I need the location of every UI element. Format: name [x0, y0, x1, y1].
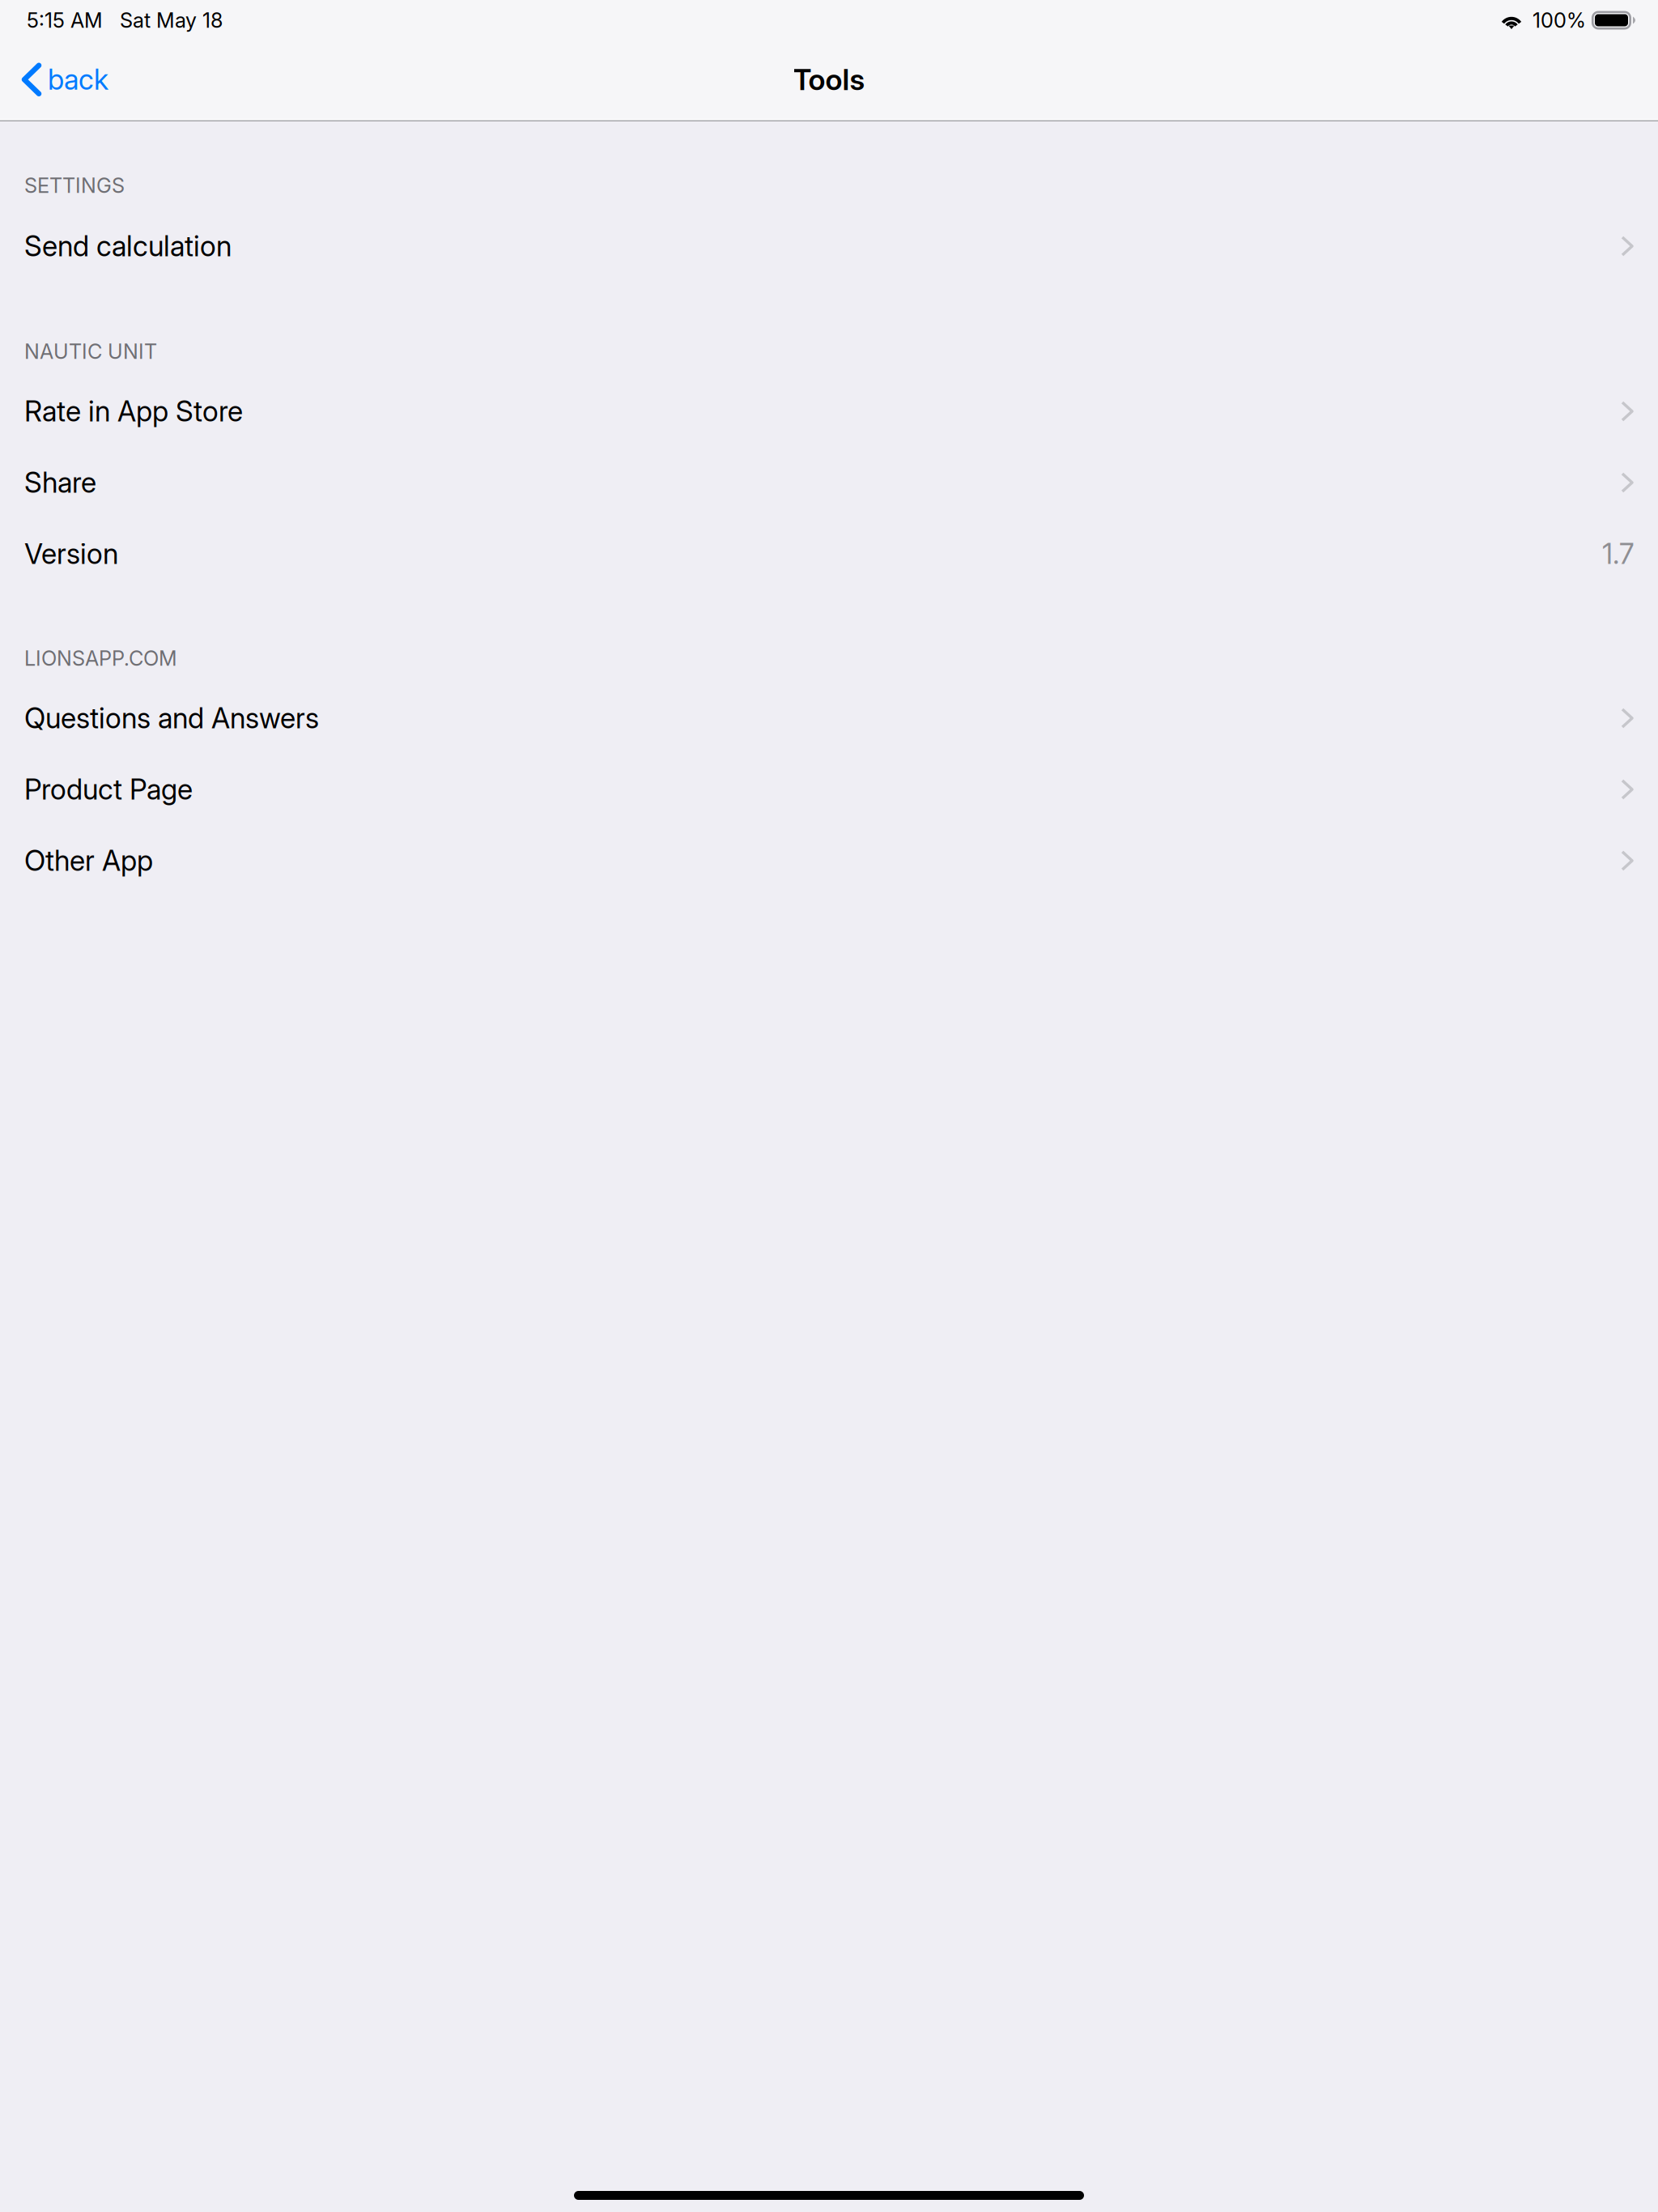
button[interactable]: Other App [0, 825, 1658, 896]
staticText: Rate in App Store [24, 394, 243, 428]
staticText: Product Page [24, 772, 193, 806]
staticText: Tools [793, 62, 865, 97]
staticText: NAUTIC UNIT [24, 339, 157, 364]
button[interactable]: Questions and Answers [0, 683, 1658, 754]
staticText: Share [24, 466, 96, 499]
button[interactable]: Send calculation [0, 211, 1658, 282]
button[interactable]: Share [0, 447, 1658, 518]
staticText: SETTINGS [24, 173, 125, 198]
staticText: Questions and Answers [24, 701, 319, 735]
staticText: 1.7 [1602, 537, 1634, 571]
staticText: 5:15 AM [27, 8, 103, 33]
staticText: Send calculation [24, 229, 232, 263]
staticText: LIONSAPP.COM [24, 646, 177, 671]
staticText: 100% [1533, 8, 1586, 33]
staticText: Sat May 18 [120, 8, 223, 33]
staticText: back [48, 63, 108, 97]
button[interactable]: Rate in App Store [0, 376, 1658, 447]
staticText: Other App [24, 844, 153, 878]
button[interactable]: Back [0, 40, 130, 119]
button[interactable]: Product Page [0, 754, 1658, 825]
staticText: Version [24, 537, 118, 571]
